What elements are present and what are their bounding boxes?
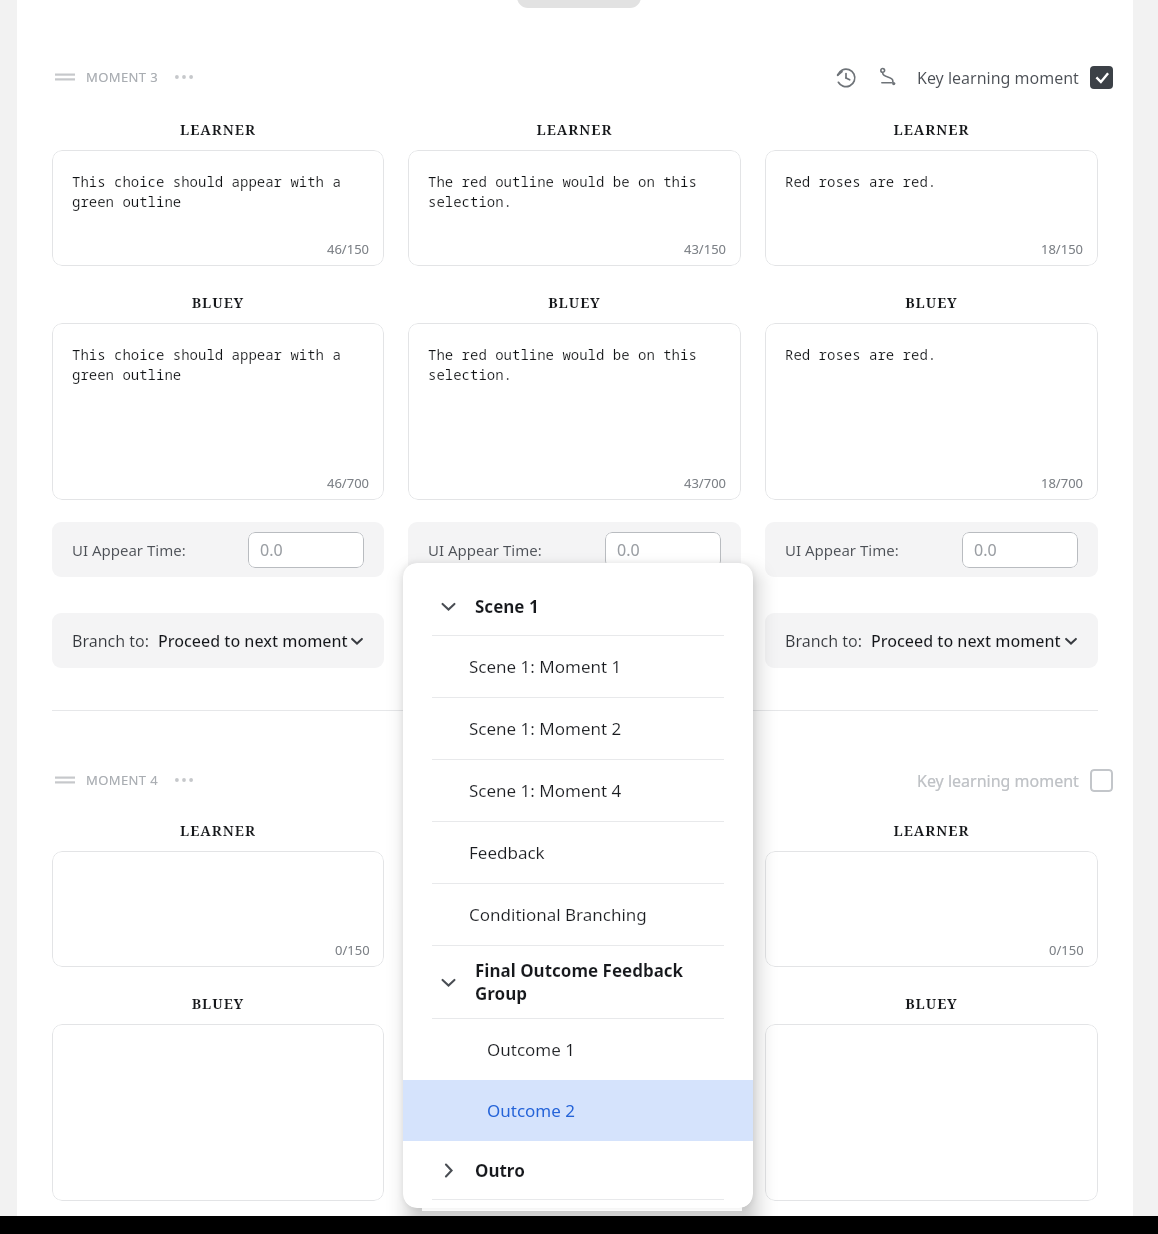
staticText: Scene 1 (475, 595, 539, 618)
staticText: Red roses are red. (785, 172, 937, 191)
button[interactable]: The red outline would be on this selecti… (408, 150, 741, 266)
staticText: Scene 1: Moment 4 (469, 779, 622, 802)
button[interactable]: Scene 1: Moment 2 (403, 698, 753, 759)
button[interactable]: More options (173, 769, 195, 791)
staticText: Branch to: (72, 630, 150, 652)
staticText: BLUEY (52, 994, 384, 1013)
button[interactable]: Key learning moment (917, 66, 1113, 89)
staticText: BLUEY (765, 994, 1098, 1013)
staticText: Key learning moment (917, 67, 1079, 89)
button[interactable]: Outcome 1 (403, 1019, 753, 1080)
staticText: Outcome 2 (487, 1099, 575, 1122)
button[interactable]: The red outline would be on this selecti… (408, 323, 741, 500)
button[interactable]: Branch to: (765, 613, 1098, 668)
button[interactable]: Branch to: (52, 613, 384, 668)
staticText: 18/150 (1041, 240, 1084, 258)
button[interactable]: UI Appear Time: (765, 522, 1098, 577)
staticText: BLUEY (765, 293, 1098, 312)
staticText: Feedback (469, 841, 545, 864)
staticText: LEARNER (408, 120, 741, 139)
button[interactable]: 0/150 (52, 851, 384, 967)
staticText: Outcome 1 (487, 1038, 575, 1061)
button[interactable]: 0/150 (765, 851, 1098, 967)
staticText: Scene 1: Moment 1 (469, 655, 622, 678)
button[interactable] (765, 1024, 1098, 1201)
staticText: 0.0 (260, 539, 283, 561)
staticText: Branch to: (785, 630, 863, 652)
staticText: Final Outcome Feedback Group (475, 959, 707, 1005)
staticText: LEARNER (765, 821, 1098, 840)
button[interactable] (52, 1024, 384, 1201)
staticText: LEARNER (765, 120, 1098, 139)
button[interactable]: Red roses are red. (765, 150, 1098, 266)
button[interactable] (408, 1024, 741, 1201)
staticText: 0.0 (974, 539, 997, 561)
staticText: Conditional Branching (469, 903, 647, 926)
staticText: BLUEY (408, 994, 741, 1013)
button[interactable]: This choice should appear with a green o… (52, 323, 384, 500)
button[interactable]: Scene 1: Moment 4 (403, 760, 753, 821)
button[interactable]: UI Appear Time: (52, 522, 384, 577)
button[interactable]: Scene 1 (403, 577, 753, 635)
staticText: The red outline would be on this selecti… (428, 172, 727, 212)
button[interactable]: Outcome 2 (403, 1080, 753, 1141)
button[interactable]: Final Outcome Feedback Group (403, 946, 753, 1018)
button[interactable]: Conditional Branching (403, 884, 753, 945)
button[interactable]: Key learning moment (917, 769, 1113, 792)
button[interactable]: UI Appear Time: (408, 522, 741, 577)
button[interactable]: Outro (403, 1141, 753, 1199)
button[interactable]: Timer (831, 62, 861, 92)
staticText: Proceed to next moment (514, 630, 704, 652)
staticText: LEARNER (52, 821, 384, 840)
staticText: Proceed to next moment (158, 630, 348, 652)
button[interactable]: Drag handle (52, 767, 78, 793)
staticText: LEARNER (52, 120, 384, 139)
button[interactable]: Branching (873, 62, 903, 92)
staticText: BLUEY (52, 293, 384, 312)
button[interactable]: Scene 1: Moment 1 (403, 636, 753, 697)
staticText: Scene 1: Moment 2 (469, 717, 622, 740)
staticText: Proceed to next moment (871, 630, 1061, 652)
staticText: Red roses are red. (785, 345, 937, 364)
button[interactable]: Feedback (403, 822, 753, 883)
button[interactable]: More options (173, 66, 195, 88)
staticText: 0/150 (335, 941, 370, 959)
staticText: MOMENT 4 (86, 771, 159, 789)
staticText: 46/700 (327, 474, 370, 492)
staticText: 46/150 (327, 240, 370, 258)
staticText: MOMENT 3 (86, 68, 159, 86)
staticText: This choice should appear with a green o… (72, 345, 370, 385)
staticText: UI Appear Time: (785, 540, 899, 560)
staticText: 0.0 (617, 539, 640, 561)
staticText: 0/150 (692, 941, 727, 959)
staticText: 0/150 (1049, 941, 1084, 959)
staticText: Branch to: (428, 630, 506, 652)
staticText: Key learning moment (917, 770, 1079, 792)
staticText: UI Appear Time: (428, 540, 542, 560)
button[interactable]: Drag handle (52, 64, 78, 90)
button[interactable]: Red roses are red. (765, 323, 1098, 500)
button[interactable]: Branch to: (408, 613, 741, 668)
staticText: 43/700 (684, 474, 727, 492)
staticText: 43/150 (684, 240, 727, 258)
button[interactable]: This choice should appear with a green o… (52, 150, 384, 266)
staticText: This choice should appear with a green o… (72, 172, 370, 212)
staticText: LEARNER (408, 821, 741, 840)
staticText: The red outline would be on this selecti… (428, 345, 727, 385)
staticText: BLUEY (408, 293, 741, 312)
staticText: Outro (475, 1159, 525, 1182)
staticText: 18/700 (1041, 474, 1084, 492)
button[interactable]: 0/150 (408, 851, 741, 967)
staticText: UI Appear Time: (72, 540, 186, 560)
